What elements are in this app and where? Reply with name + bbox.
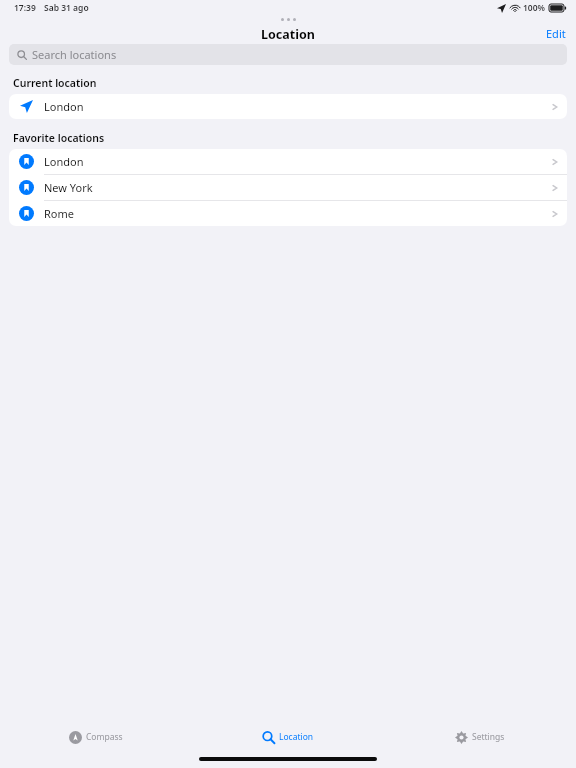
button[interactable]: Search locations xyxy=(9,44,567,65)
staticText: Search locations xyxy=(32,47,117,62)
staticText: Settings xyxy=(472,731,505,743)
button[interactable]: Settings xyxy=(384,720,576,754)
staticText: Location xyxy=(279,731,314,743)
button[interactable]: Location xyxy=(192,720,384,754)
button[interactable]: London xyxy=(9,149,567,174)
button[interactable]: London xyxy=(9,94,567,119)
staticText: Location xyxy=(261,26,315,43)
staticText: Favorite locations xyxy=(13,131,105,145)
staticText: Edit xyxy=(546,26,566,41)
button[interactable]: Rome xyxy=(9,201,567,226)
staticText: 17:39 xyxy=(14,2,36,14)
button[interactable]: Compass xyxy=(0,720,192,754)
staticText: New York xyxy=(44,180,93,195)
staticText: Sab 31 ago xyxy=(44,2,89,14)
button[interactable]: Edit xyxy=(536,23,576,44)
staticText: London xyxy=(44,154,84,169)
staticText: Compass xyxy=(86,731,123,743)
staticText: 100% xyxy=(523,2,546,14)
staticText: Rome xyxy=(44,206,74,221)
button[interactable]: New York xyxy=(9,175,567,200)
staticText: London xyxy=(44,99,84,114)
staticText: Current location xyxy=(13,76,97,90)
